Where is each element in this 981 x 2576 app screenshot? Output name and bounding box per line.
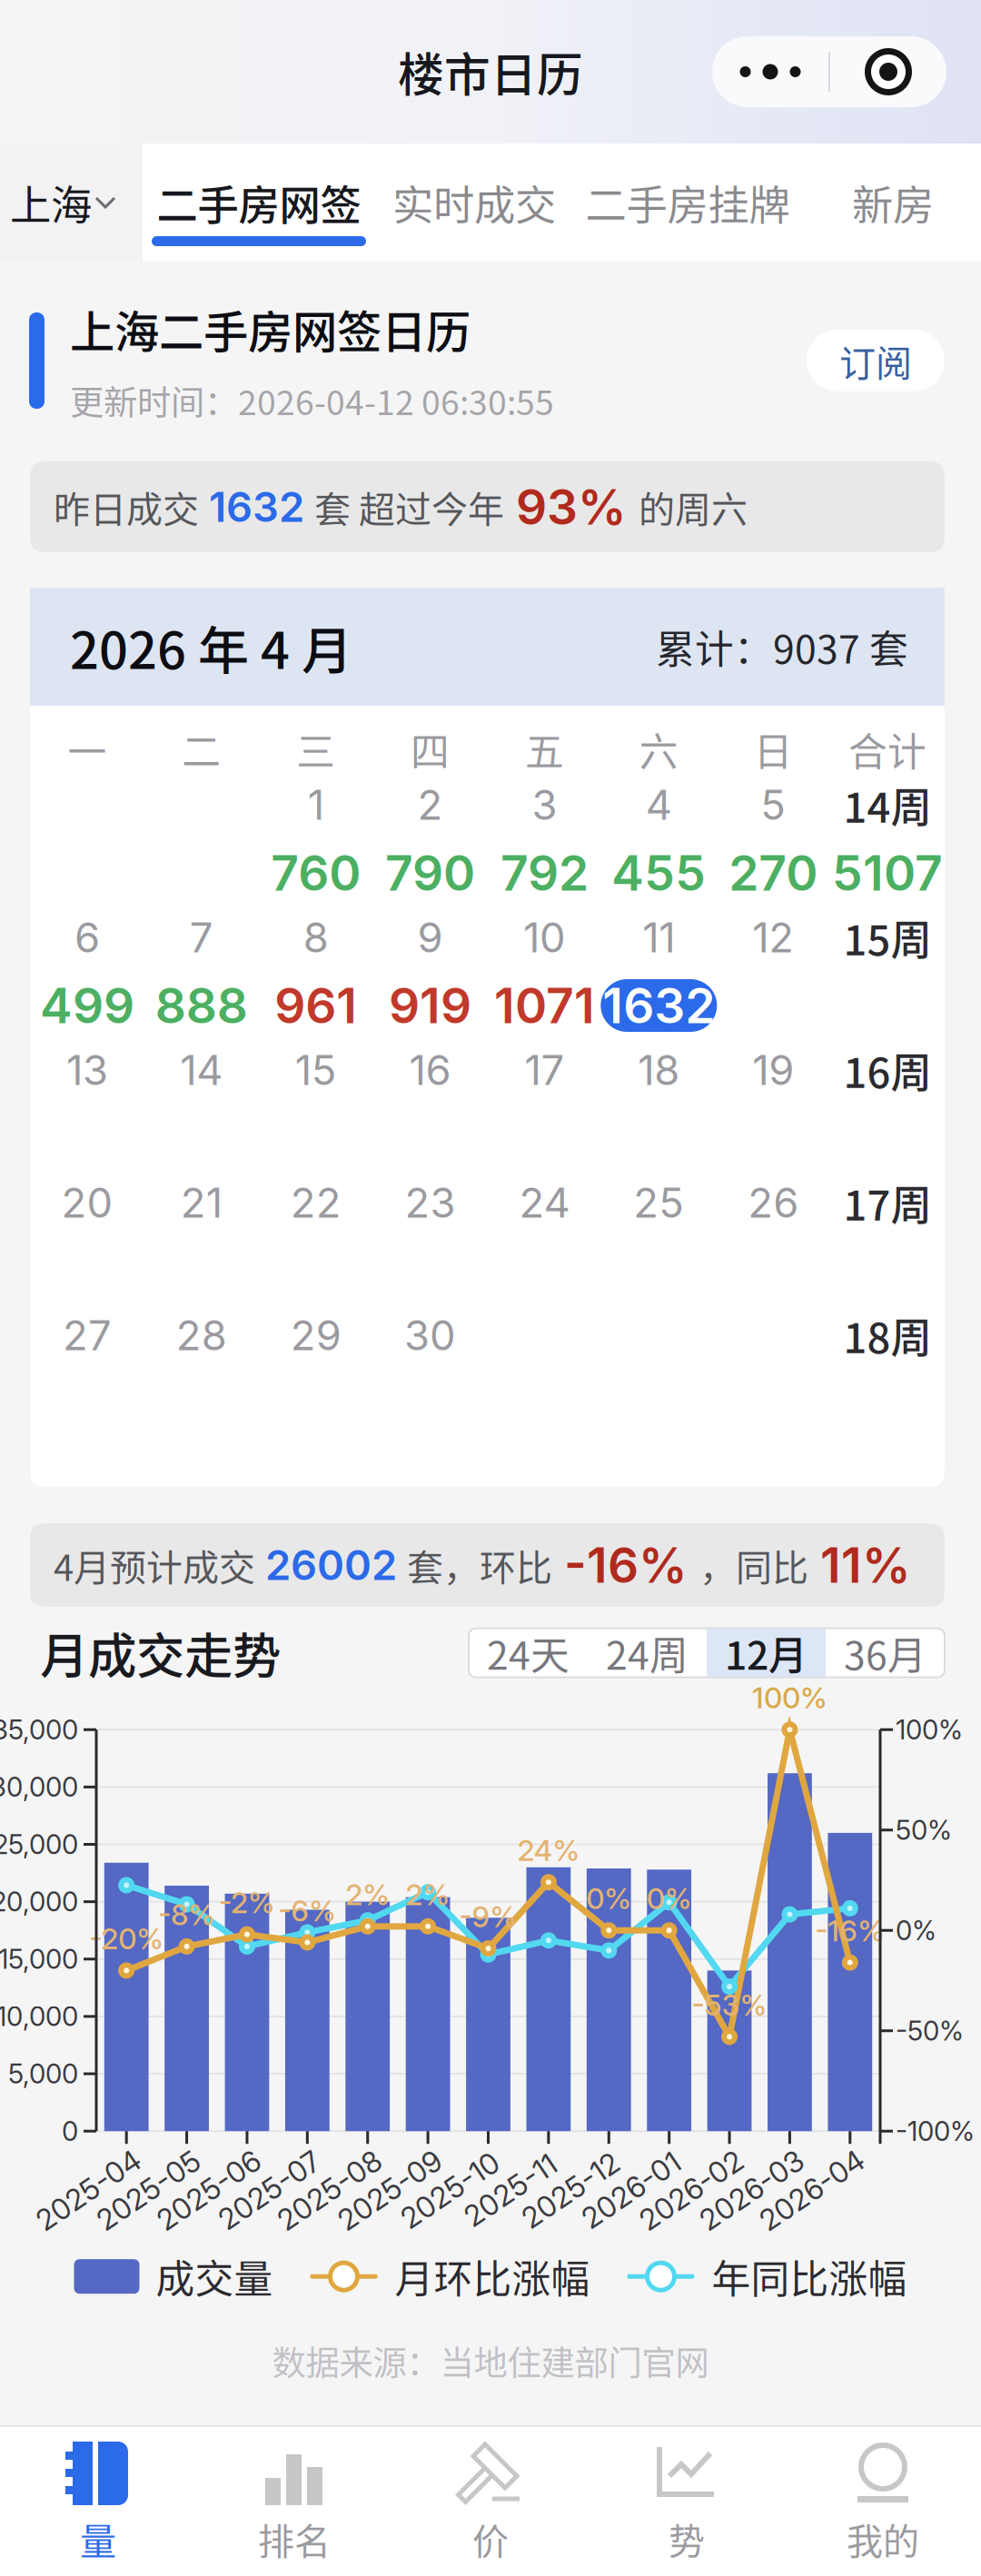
staticText: 10,000 [0, 2000, 78, 2033]
button[interactable]: 36月 [826, 1628, 945, 1677]
staticText: 2% [345, 1877, 390, 1912]
staticText: 14周 [843, 775, 932, 835]
button[interactable]: 量 [0, 2427, 196, 2576]
staticText: 势 [669, 2512, 705, 2565]
staticText: 2025-09 [331, 2173, 449, 2208]
staticText: 2025-08 [270, 2173, 388, 2208]
button[interactable]: 新房 [802, 144, 981, 262]
staticText: 26 [748, 1178, 799, 1228]
staticText: 499 [40, 976, 134, 1035]
staticText: 五 [525, 721, 564, 777]
staticText: 22 [290, 1178, 341, 1228]
staticText: 14 [180, 1045, 223, 1095]
staticText: 24% [517, 1833, 580, 1868]
staticText: 8 [303, 912, 329, 962]
staticText: 16 [409, 1045, 451, 1095]
staticText: 2025-07 [211, 2173, 327, 2208]
button[interactable]: 24天 [469, 1628, 588, 1677]
button[interactable]: 更多 [712, 36, 946, 107]
staticText: -6% [278, 1893, 336, 1928]
staticText: 楼市日历 [398, 38, 583, 105]
button[interactable]: 二手房挂牌 [573, 144, 802, 262]
staticText: 六 [639, 721, 678, 777]
staticText: 10 [523, 912, 566, 962]
staticText: -16% [552, 1536, 699, 1594]
staticText: 17周 [843, 1173, 932, 1232]
staticText: 2026 年 4 月 [70, 610, 352, 684]
staticText: 20,000 [0, 1886, 78, 1918]
staticText: 888 [155, 976, 248, 1035]
staticText: 二手房挂牌 [585, 173, 790, 232]
staticText: 0% [896, 1914, 936, 1947]
staticText: 35,000 [0, 1714, 78, 1746]
staticText: 更新时间：2026-04-12 06:30:55 [70, 376, 554, 425]
staticText: 二手房网签 [157, 173, 361, 232]
staticText: 2025-11 [458, 2173, 563, 2208]
staticText: 月环比涨幅 [395, 2248, 590, 2305]
staticText: 18周 [843, 1305, 932, 1365]
staticText: 三 [296, 721, 335, 777]
staticText: 套，环比 [407, 1539, 552, 1591]
staticText: 3 [532, 780, 557, 830]
button[interactable]: 实时成交 [375, 144, 573, 262]
staticText: 日 [754, 721, 793, 777]
staticText: -100% [896, 2115, 975, 2147]
button[interactable]: 二手房网签 [143, 144, 375, 262]
staticText: 17 [524, 1045, 564, 1095]
staticText: 15周 [843, 908, 932, 967]
staticText: 30,000 [0, 1771, 78, 1803]
staticText: 成交量 [156, 2248, 273, 2305]
staticText: 2026-03 [693, 2173, 811, 2208]
staticText: 26002 [255, 1540, 407, 1590]
staticText: 我的 [847, 2512, 919, 2565]
staticText: 36月 [844, 1625, 926, 1681]
staticText: 7 [190, 912, 213, 962]
staticText: 5,000 [8, 2058, 78, 2090]
staticText: 2025-05 [90, 2173, 208, 2208]
staticText: 4 [646, 780, 672, 830]
staticText: 0% [586, 1881, 632, 1916]
staticText: 4月预计成交 [54, 1539, 255, 1591]
staticText: 270 [729, 844, 818, 902]
button[interactable]: 24周 [588, 1628, 707, 1677]
button[interactable]: 价 [392, 2427, 589, 2576]
staticText: 2% [406, 1877, 450, 1912]
button[interactable]: 订阅 [807, 330, 945, 391]
staticText: 11 [642, 912, 675, 962]
staticText: 1632 [199, 482, 314, 532]
staticText: -53% [692, 1987, 767, 2023]
button[interactable]: 势 [589, 2427, 785, 2576]
button[interactable]: 我的 [785, 2427, 981, 2576]
staticText: -9% [459, 1899, 517, 1934]
staticText: 2 [417, 780, 443, 830]
staticText: 13 [66, 1045, 108, 1095]
button[interactable]: 上海 [0, 144, 143, 262]
staticText: -2% [219, 1885, 275, 1920]
staticText: 新房 [852, 173, 934, 232]
staticText: 12 [752, 912, 794, 962]
staticText: 0% [646, 1881, 692, 1916]
staticText: ，同比 [699, 1539, 808, 1591]
staticText: 0 [62, 2115, 78, 2147]
staticText: 昨日成交 [54, 481, 199, 533]
staticText: 24天 [487, 1625, 570, 1681]
button[interactable]: 12月 [707, 1628, 826, 1677]
staticText: 50% [896, 1814, 952, 1846]
button[interactable]: 排名 [196, 2427, 392, 2576]
staticText: 20 [61, 1178, 113, 1228]
staticText: 24 [519, 1178, 570, 1228]
staticText: 27 [63, 1310, 112, 1360]
staticText: 实时成交 [392, 173, 556, 232]
staticText: 25 [633, 1178, 684, 1228]
staticText: 排名 [258, 2512, 331, 2565]
staticText: 的周六 [639, 481, 748, 533]
staticText: 1 [308, 780, 324, 830]
staticText: 15 [295, 1045, 337, 1095]
staticText: 5 [760, 780, 786, 830]
staticText: 年同比涨幅 [712, 2248, 907, 2305]
staticText: 量 [80, 2512, 116, 2565]
staticText: 25,000 [0, 1828, 78, 1861]
staticText: 四 [411, 721, 450, 777]
staticText: 月成交走势 [40, 1618, 281, 1688]
staticText: 二 [182, 721, 221, 777]
